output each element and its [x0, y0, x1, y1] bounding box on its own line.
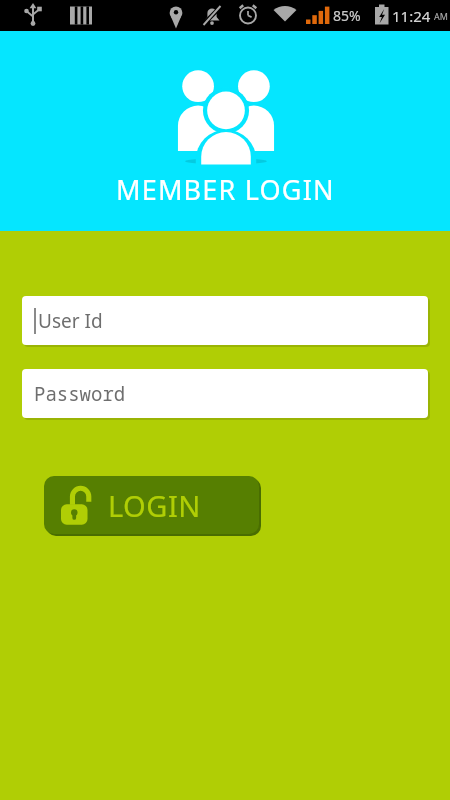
staticText: 85% [333, 6, 361, 25]
staticText: MEMBER LOGIN [116, 171, 335, 208]
staticText: User Id [38, 308, 103, 334]
staticText: Password [34, 381, 126, 407]
staticText: LOGIN [108, 486, 201, 525]
button[interactable]: Password [22, 369, 428, 418]
staticText: 11:24 [392, 6, 431, 26]
button[interactable]: User Id [22, 296, 428, 345]
button[interactable]: LOGIN [44, 476, 259, 534]
staticText: AM [434, 10, 448, 22]
other: Members [164, 57, 288, 165]
